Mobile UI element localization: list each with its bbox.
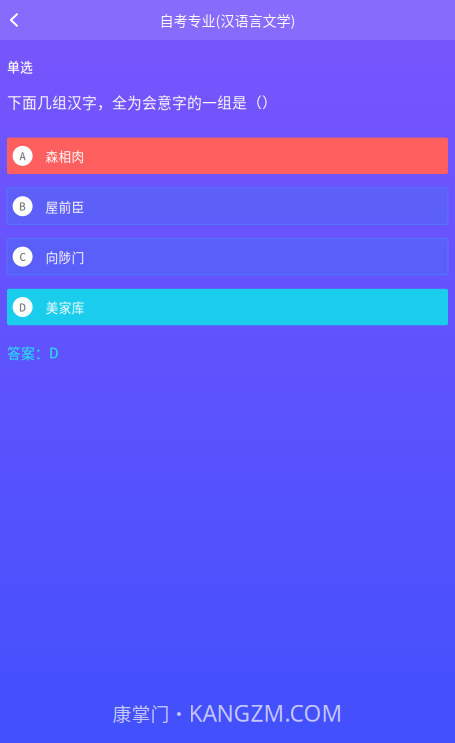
staticText: C	[20, 249, 26, 264]
staticText: 康掌门	[112, 699, 169, 726]
button[interactable]: Back	[0, 0, 28, 40]
button[interactable]: C	[7, 238, 448, 275]
staticText: 单选	[7, 57, 33, 75]
button[interactable]: A	[7, 138, 448, 174]
staticText: D	[19, 300, 26, 314]
staticText: ·	[169, 699, 188, 726]
staticText: 自考专业(汉语言文学)	[159, 10, 295, 30]
staticText: B	[19, 199, 26, 213]
staticText: 下面几组汉字，全为会意字的一组是（）	[7, 91, 277, 112]
staticText: 屋前臣	[45, 197, 84, 215]
staticText: 美家库	[45, 298, 84, 316]
staticText: 向陟门	[45, 247, 84, 266]
button[interactable]: B	[7, 188, 448, 224]
staticText: 答案：D	[7, 342, 59, 363]
staticText: 森相肉	[45, 147, 84, 165]
staticText: A	[20, 149, 26, 163]
button[interactable]: D	[7, 289, 448, 325]
staticText: KANGZM.COM	[188, 698, 342, 728]
